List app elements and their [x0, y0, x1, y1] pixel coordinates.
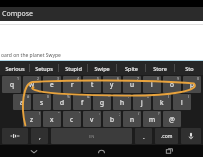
staticText: t [91, 80, 94, 89]
staticText: ) [188, 94, 190, 99]
staticText: q [10, 80, 14, 89]
button[interactable]: .com [155, 128, 178, 144]
button[interactable]: n [123, 111, 141, 127]
staticText: f [81, 98, 84, 107]
staticText: Spite [125, 65, 138, 72]
staticText: ( [168, 94, 170, 99]
button[interactable]: Symbols [2, 128, 28, 144]
staticText: 4 [77, 76, 80, 81]
staticText: g [100, 98, 104, 107]
button[interactable]: p [183, 76, 201, 93]
staticText: z [30, 115, 34, 124]
staticText: EN [89, 134, 95, 139]
staticText: $ [47, 94, 50, 99]
staticText: b [110, 115, 114, 124]
button[interactable]: , [31, 128, 48, 144]
staticText: p [190, 80, 194, 89]
button[interactable]: Spite [117, 61, 145, 75]
button[interactable]: . [135, 128, 152, 144]
button[interactable]: r [63, 76, 81, 93]
button[interactable]: y [103, 76, 121, 93]
button[interactable]: s [33, 94, 51, 110]
button[interactable]: k [153, 94, 171, 110]
staticText: m [149, 115, 156, 124]
staticText: 2 [37, 76, 40, 81]
button[interactable]: Setups [30, 61, 58, 75]
button[interactable]: t [83, 76, 101, 93]
staticText: Compose [2, 9, 34, 19]
button[interactable]: u [123, 76, 141, 93]
staticText: , [39, 132, 41, 141]
staticText: h [120, 98, 125, 107]
staticText: ' [79, 111, 80, 116]
button[interactable]: Stupid [59, 61, 87, 75]
staticText: ; [119, 111, 120, 116]
button[interactable]: Recent apps [135, 145, 203, 157]
staticText: n [130, 115, 135, 124]
button[interactable]: @ [163, 111, 181, 127]
button[interactable]: l [173, 94, 191, 110]
staticText: e [50, 80, 54, 89]
staticText: . [143, 132, 145, 141]
staticText: Sto [185, 65, 194, 72]
staticText: a [20, 98, 24, 107]
button[interactable]: f [73, 94, 91, 110]
button[interactable]: x [43, 111, 61, 127]
button[interactable]: a [13, 94, 31, 110]
staticText: 1 [17, 76, 20, 81]
button[interactable]: o [163, 76, 181, 93]
staticText: x [50, 115, 54, 124]
staticText: s [40, 98, 44, 107]
button[interactable]: Compose [0, 7, 203, 21]
button[interactable]: j [133, 94, 151, 110]
staticText: v [90, 115, 94, 124]
staticText: " [58, 111, 60, 116]
button[interactable]: w [23, 76, 41, 93]
staticText: 0 [197, 76, 200, 81]
staticText: k [160, 98, 164, 107]
button[interactable]: z [23, 111, 41, 127]
staticText: 9 [177, 76, 180, 81]
button[interactable]: Sto [175, 61, 203, 75]
button[interactable]: h [113, 94, 131, 110]
staticText: 5 [97, 76, 100, 81]
staticText: d [60, 98, 64, 107]
staticText: Swipe [94, 65, 110, 72]
button[interactable]: b [103, 111, 121, 127]
button[interactable]: i [143, 76, 161, 93]
staticText: r [71, 80, 74, 89]
button[interactable]: Voice input [181, 128, 201, 144]
button[interactable]: q [2, 76, 21, 93]
button[interactable]: g [93, 94, 111, 110]
button[interactable]: e [43, 76, 61, 93]
button[interactable]: Swipe [88, 61, 116, 75]
staticText: u [130, 80, 135, 89]
staticText: # [27, 94, 30, 99]
button[interactable]: Serious [0, 61, 29, 75]
staticText: l [181, 98, 183, 107]
staticText: ? [158, 111, 160, 116]
staticText: 8 [157, 76, 160, 81]
button[interactable]: Home [67, 145, 135, 157]
staticText: .com [161, 133, 173, 140]
button[interactable]: v [83, 111, 101, 127]
button[interactable]: Space [51, 128, 132, 144]
staticText: ! [39, 111, 40, 116]
button[interactable]: c [63, 111, 81, 127]
button[interactable]: Hide keyboard [0, 145, 67, 157]
staticText: Serious [5, 65, 25, 72]
staticText: y [110, 80, 114, 89]
staticText: * [108, 94, 110, 99]
staticText: Store [153, 65, 167, 72]
staticText: oard on the planet Swype [1, 52, 61, 59]
staticText: : [99, 111, 100, 116]
staticText: % [67, 94, 70, 99]
button[interactable]: Store [146, 61, 174, 75]
staticText: / [138, 111, 140, 116]
button[interactable]: m [143, 111, 161, 127]
staticText: i [151, 80, 153, 89]
staticText: c [70, 115, 74, 124]
staticText: 6 [117, 76, 120, 81]
staticText: Setups [35, 65, 53, 72]
button[interactable]: d [53, 94, 71, 110]
